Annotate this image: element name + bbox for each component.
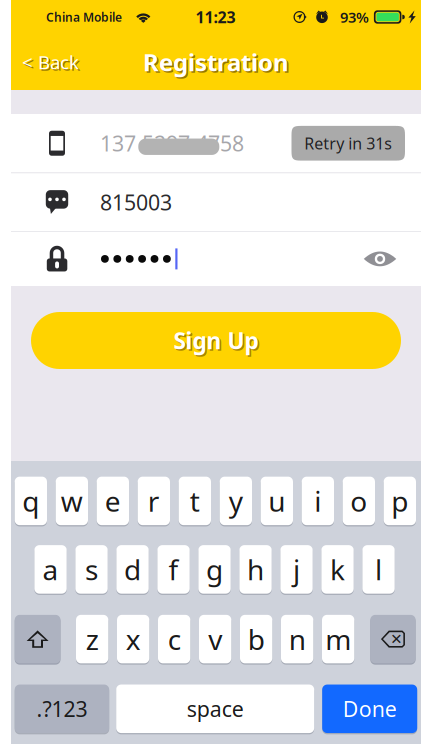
staticText: a — [42, 551, 58, 588]
staticText: t — [190, 482, 200, 519]
staticText: o — [350, 482, 367, 519]
staticText: Registration — [143, 46, 289, 78]
button[interactable]: Delete — [370, 614, 416, 664]
button[interactable]: space — [116, 684, 314, 734]
staticText: u — [268, 482, 285, 519]
button[interactable]: q — [15, 476, 47, 526]
staticText: space — [187, 695, 244, 723]
button[interactable]: l — [362, 544, 395, 594]
staticText: 815003 — [100, 188, 172, 216]
staticText: China Mobile — [46, 9, 122, 25]
staticText: n — [289, 620, 306, 658]
staticText: v — [208, 620, 222, 658]
staticText: Sign Up — [175, 327, 260, 357]
button[interactable]: a — [34, 544, 67, 594]
button[interactable]: i — [302, 476, 334, 526]
staticText: y — [229, 482, 243, 519]
staticText: c — [168, 620, 181, 658]
staticText: < Back — [23, 51, 80, 76]
staticText: ✕ — [390, 631, 402, 647]
button[interactable]: Shift — [15, 614, 60, 664]
staticText: d — [124, 551, 141, 588]
staticText: z — [86, 620, 99, 658]
staticText: j — [293, 551, 300, 588]
staticText: m — [325, 620, 351, 658]
button[interactable]: v — [199, 614, 231, 664]
button[interactable]: j — [280, 544, 313, 594]
button[interactable]: c — [158, 614, 190, 664]
button[interactable]: u — [261, 476, 293, 526]
button[interactable]: k — [321, 544, 354, 594]
button[interactable]: f — [157, 544, 190, 594]
staticText: s — [85, 551, 98, 588]
staticText: q — [22, 482, 39, 519]
staticText: k — [330, 551, 345, 588]
button[interactable]: Done — [322, 684, 417, 734]
staticText: r — [148, 482, 160, 519]
button[interactable]: g — [198, 544, 231, 594]
button[interactable]: m — [322, 614, 354, 664]
staticText: w — [61, 482, 83, 519]
button[interactable]: t — [179, 476, 211, 526]
button[interactable]: y — [220, 476, 252, 526]
button[interactable]: x — [117, 614, 149, 664]
button[interactable]: Sign Up — [31, 312, 401, 369]
button[interactable]: e — [97, 476, 129, 526]
button[interactable]: o — [343, 476, 375, 526]
staticText: Sign Up — [173, 325, 258, 355]
button[interactable]: < Back — [11, 40, 93, 84]
button[interactable]: .?123 — [15, 684, 109, 734]
button[interactable]: d — [116, 544, 149, 594]
staticText: e — [105, 482, 121, 519]
staticText: i — [314, 482, 321, 519]
button[interactable]: Retry in 31s — [291, 126, 405, 161]
staticText: h — [247, 551, 264, 588]
button[interactable]: z — [76, 614, 108, 664]
staticText: Retry in 31s — [304, 133, 392, 154]
staticText: p — [391, 482, 408, 519]
staticText: g — [206, 551, 223, 588]
staticText: b — [248, 620, 265, 658]
button[interactable]: b — [240, 614, 272, 664]
staticText: Done — [343, 695, 397, 723]
button[interactable]: w — [56, 476, 88, 526]
button[interactable]: h — [239, 544, 272, 594]
staticText: Registration — [144, 47, 290, 79]
staticText: 137 5297 4758 — [100, 129, 244, 157]
button[interactable]: n — [281, 614, 313, 664]
staticText: f — [169, 551, 179, 588]
staticText: .?123 — [36, 695, 87, 723]
staticText: x — [126, 620, 141, 658]
button[interactable]: r — [138, 476, 170, 526]
button[interactable]: p — [384, 476, 416, 526]
staticText: 93% — [340, 7, 369, 27]
button[interactable]: Show password — [360, 239, 400, 279]
staticText: 11:23 — [195, 6, 235, 28]
button[interactable]: s — [75, 544, 108, 594]
staticText: l — [375, 551, 382, 588]
staticText: < Back — [22, 50, 79, 74]
